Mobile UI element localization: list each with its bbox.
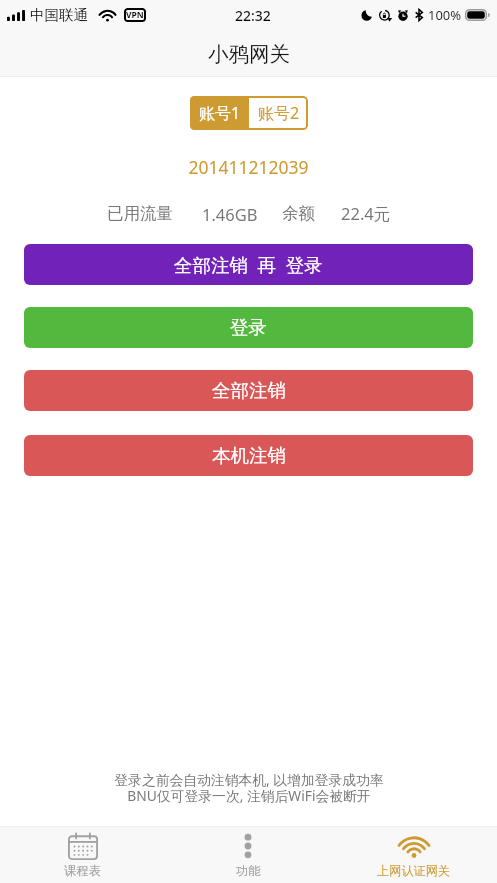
staticText: 课程表 — [64, 863, 101, 878]
button[interactable]: 账号1 — [190, 96, 249, 130]
staticText: 小鸦网关 — [208, 41, 290, 67]
staticText: VPN — [126, 9, 144, 21]
button[interactable]: Timetable — [0, 827, 165, 883]
staticText: 中国联通 — [30, 6, 88, 24]
staticText: 全部注销 再 登录 — [174, 252, 323, 277]
button[interactable]: 登录 — [24, 307, 473, 348]
staticText: 功能 — [236, 863, 261, 878]
staticText: 22.4元 — [341, 202, 391, 225]
staticText: 登录之前会自动注销本机, 以增加登录成功率 BNU仅可登录一次, 注销后WiFi… — [114, 770, 384, 805]
button[interactable]: Network gateway — [331, 827, 497, 883]
staticText: 201411212039 — [0, 155, 497, 179]
button[interactable]: 账号2 — [249, 96, 308, 130]
staticText: 账号2 — [258, 102, 300, 124]
button[interactable]: 本机注销 — [24, 435, 473, 476]
staticText: 全部注销 — [212, 379, 286, 402]
staticText: 登录 — [230, 316, 267, 339]
staticText: 1.46GB — [202, 203, 258, 225]
staticText: 账号1 — [199, 102, 241, 124]
staticText: 上网认证网关 — [377, 863, 451, 878]
staticText: 22:32 — [235, 6, 271, 25]
staticText: 本机注销 — [212, 444, 286, 467]
staticText: 余额 — [282, 203, 315, 224]
staticText: 已用流量 — [107, 203, 173, 224]
button[interactable]: 全部注销 — [24, 370, 473, 411]
button[interactable]: Functions — [165, 827, 331, 883]
button[interactable]: 全部注销 再 登录 — [24, 244, 473, 285]
staticText: 100% — [428, 6, 462, 24]
